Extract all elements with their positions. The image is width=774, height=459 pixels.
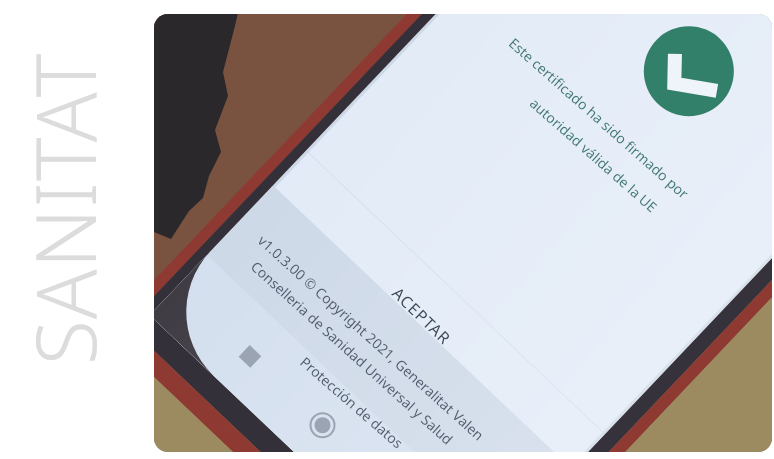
staticText: SANITAT xyxy=(8,52,108,365)
staticText: ACEPTAR xyxy=(388,282,456,350)
staticText: Protección de datos xyxy=(296,352,408,452)
button[interactable]: Foto del certificado COVID en el movil xyxy=(154,14,772,452)
button[interactable]: ACEPTAR xyxy=(386,281,473,366)
staticText: autoridad válida de la UE xyxy=(526,93,661,216)
button[interactable]: Protección de datos xyxy=(296,352,423,452)
staticText: v1.0.3.00 © Copyright 2021, Generalitat … xyxy=(254,231,488,444)
staticText: Este certificado ha sido firmado por una xyxy=(504,33,712,221)
staticText: Conselleria de Sanidad Universal y Salud xyxy=(247,257,457,449)
